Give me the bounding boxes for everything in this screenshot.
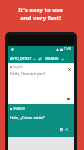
- button[interactable]: AUTO_DETECT: [10, 57, 36, 61]
- staticText: SPANISH: [13, 107, 25, 111]
- other: Choose source language: [33, 58, 36, 61]
- button[interactable]: Copy: [60, 128, 63, 131]
- staticText: Hola, ¿Cómo estás?: [10, 115, 45, 120]
- button[interactable]: Clear text: [68, 68, 71, 71]
- button[interactable]: SPANISH: [45, 57, 64, 61]
- button[interactable]: Swap languages: [38, 57, 42, 61]
- staticText: 11:50: [64, 47, 72, 51]
- button[interactable]: Share: [65, 128, 68, 131]
- staticText: English: [13, 65, 23, 69]
- staticText: and very fast!: [20, 14, 61, 22]
- staticText: SPANISH: [45, 57, 59, 61]
- button[interactable]: Translate: [67, 97, 71, 101]
- staticText: Hello, How are you?: [10, 71, 46, 76]
- staticText: AUTO_DETECT: [10, 57, 32, 61]
- other: Choose target language: [61, 58, 64, 61]
- staticText: It's easy to use: [18, 6, 63, 14]
